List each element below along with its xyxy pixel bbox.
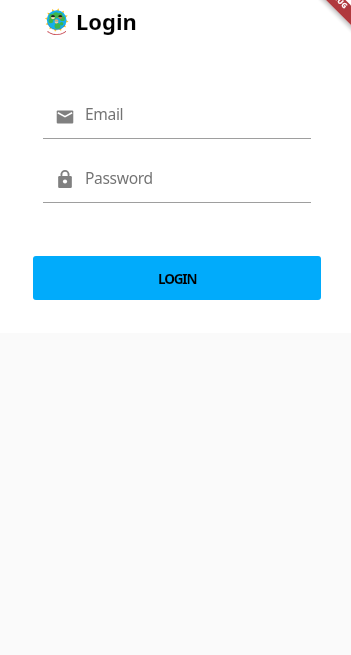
other: Debug banner xyxy=(287,0,351,64)
button[interactable]: Email xyxy=(56,99,311,131)
staticText: Login xyxy=(76,6,137,36)
button[interactable]: Password xyxy=(56,163,311,195)
staticText: DEBUG xyxy=(324,0,350,12)
button[interactable]: LOGIN xyxy=(33,256,321,300)
staticText: Password xyxy=(85,167,153,188)
staticText: LOGIN xyxy=(158,269,197,288)
staticText: Email xyxy=(85,103,124,124)
